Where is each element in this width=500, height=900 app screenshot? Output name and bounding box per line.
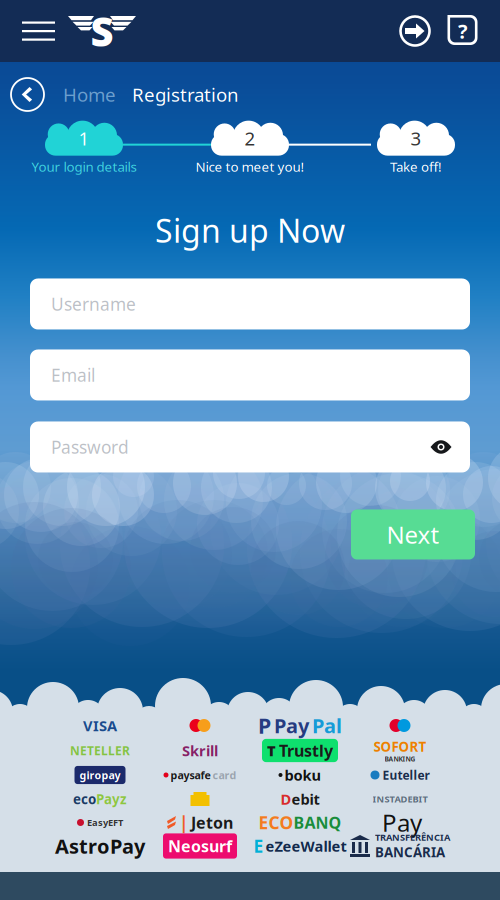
staticText: card [212, 768, 236, 782]
staticText: EasyEFT [87, 816, 123, 829]
staticText: boku [284, 765, 321, 785]
staticText: D [280, 789, 291, 809]
button[interactable]: Help [440, 6, 500, 56]
staticText: giropay [79, 768, 120, 782]
staticText: S [90, 4, 113, 57]
staticText: ECO [258, 811, 293, 834]
button[interactable]: Password [30, 421, 470, 472]
button[interactable]: Home [44, 82, 116, 107]
staticText: BANCÁRIA [375, 843, 445, 861]
staticText: ebit [291, 789, 319, 809]
staticText: BANQ [293, 812, 341, 833]
button[interactable]: Next [351, 509, 475, 559]
staticText: Your login details [31, 158, 136, 175]
staticText: eco [73, 790, 96, 808]
staticText: T [267, 741, 276, 760]
staticText: VISA [83, 716, 117, 735]
button[interactable]: Home [67, 2, 137, 60]
staticText: INSTADEBIT [372, 793, 427, 805]
staticText: Home [63, 82, 116, 107]
staticText: NETELLER [70, 742, 130, 758]
button[interactable]: Log in [390, 6, 440, 56]
staticText: paysafe [170, 768, 210, 782]
staticText: Neosurf [168, 835, 232, 857]
staticText: 1 [78, 126, 89, 151]
staticText: BANKING [384, 754, 415, 763]
staticText: SOFORT [373, 738, 426, 755]
staticText: Email [51, 363, 95, 386]
button[interactable]: Email [30, 349, 470, 400]
staticText: eZeeWallet [265, 836, 346, 856]
staticText: 3 [410, 126, 421, 151]
staticText: Pay [382, 807, 422, 838]
staticText: Trustly [279, 740, 333, 761]
staticText: ? [458, 18, 468, 44]
staticText: Skrill [182, 741, 218, 760]
staticText: Pal [312, 712, 342, 739]
staticText: Password [51, 435, 129, 458]
staticText: Registration [132, 82, 239, 107]
staticText: Sign up Now [155, 209, 345, 251]
staticText: 2 [244, 126, 255, 151]
button[interactable]: Menu [0, 4, 67, 57]
staticText: | [179, 811, 189, 834]
staticText: Username [51, 292, 136, 315]
staticText: TRANSFERÊNCIA [375, 831, 450, 843]
staticText: Take off! [390, 158, 442, 175]
staticText: Pay [274, 712, 309, 739]
staticText: Euteller [382, 767, 429, 783]
staticText: Nice to meet you! [195, 158, 304, 175]
staticText: Next [386, 519, 439, 550]
button[interactable]: Username [30, 278, 470, 329]
staticText: Payz [96, 790, 127, 808]
button[interactable]: Back [11, 78, 44, 111]
staticText: AstroPay [55, 833, 145, 859]
staticText: Jeton [191, 812, 233, 833]
staticText: P [258, 711, 271, 740]
staticText: E [253, 834, 263, 857]
